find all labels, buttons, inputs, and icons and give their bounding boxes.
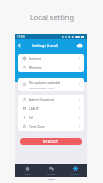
staticText: Time Zone <box>29 125 45 129</box>
button[interactable]: REBOOT <box>20 138 82 145</box>
button[interactable]: Devices <box>39 164 63 177</box>
staticText: Local setting <box>30 12 74 22</box>
staticText: Settings (Local) <box>32 43 59 48</box>
staticText: 17:08 <box>17 35 25 39</box>
staticText: Devices <box>47 172 56 175</box>
staticText: Home <box>24 172 31 175</box>
button[interactable]: Wireless <box>18 63 84 72</box>
staticText: Settings <box>70 172 80 175</box>
staticText: REBOOT <box>43 139 59 144</box>
button[interactable]: LAN IP <box>18 104 84 113</box>
button[interactable]: Admin Password <box>18 95 84 104</box>
staticText: Tel <box>29 116 34 120</box>
staticText: No updates available <box>29 81 61 85</box>
staticText: LAN IP <box>29 107 39 111</box>
staticText: Wireless <box>29 66 42 70</box>
button[interactable]: Tel <box>18 113 84 122</box>
staticText: Internet <box>29 57 42 61</box>
button[interactable]: Home <box>15 164 39 177</box>
staticText: Current version: 1.3.21 <box>29 86 55 89</box>
staticText: Admin Password <box>29 98 55 102</box>
button[interactable]: No updates available <box>18 78 84 91</box>
button[interactable]: Time Zone <box>18 122 84 131</box>
button[interactable]: Back <box>15 39 23 52</box>
button[interactable]: Settings <box>63 164 87 177</box>
button[interactable]: Cloud <box>74 39 85 52</box>
button[interactable]: Internet <box>18 54 84 63</box>
